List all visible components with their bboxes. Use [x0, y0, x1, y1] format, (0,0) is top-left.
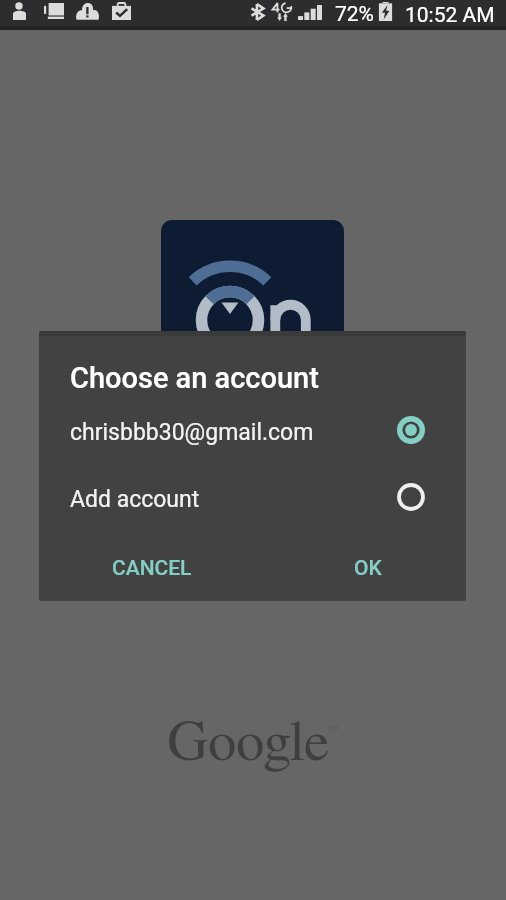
other: Bluetooth on: [250, 3, 265, 21]
other: Signal strength: [298, 5, 322, 20]
button[interactable]: Add account: [39, 465, 466, 533]
staticText: CANCEL: [112, 556, 192, 581]
staticText: Choose an account: [70, 361, 319, 395]
other: Account: [13, 2, 26, 20]
other: Not selected: [396, 482, 426, 512]
other: 4G: [272, 2, 293, 21]
other: Backup problem: [76, 2, 99, 20]
button[interactable]: CANCEL: [97, 545, 207, 592]
staticText: 10:52 AM: [405, 3, 495, 28]
staticText: ™: [328, 726, 339, 736]
staticText: OK: [354, 556, 382, 581]
other: Battery charging: [378, 2, 393, 21]
other: Connected to computer: [44, 3, 64, 19]
other: Work profile: [112, 3, 131, 20]
staticText: Google: [167, 714, 330, 771]
staticText: 72%: [335, 2, 374, 27]
staticText: Add account: [70, 486, 200, 513]
other: OnStar: [161, 220, 344, 350]
other: Selected: [396, 415, 426, 445]
button[interactable]: chrisbbb30@gmail.com: [39, 398, 466, 466]
button[interactable]: OK: [339, 545, 397, 592]
staticText: chrisbbb30@gmail.com: [70, 419, 314, 446]
